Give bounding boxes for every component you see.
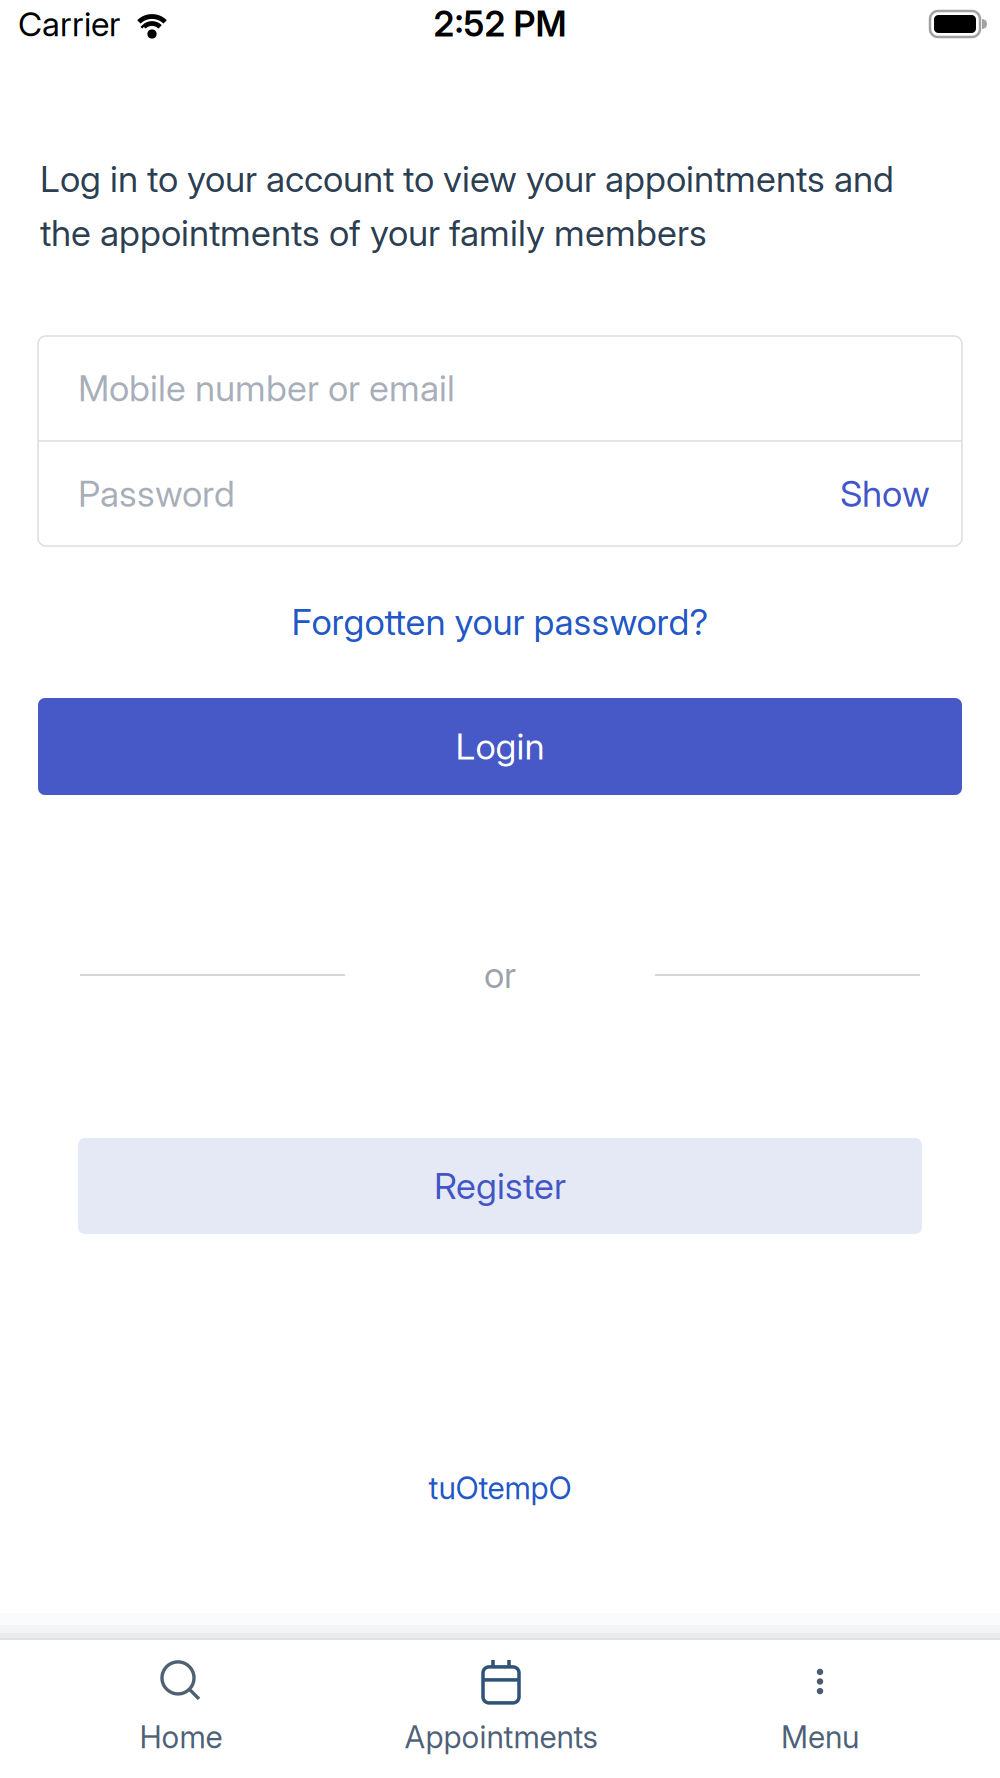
staticText: Show <box>840 472 930 515</box>
staticText: Forgotten your password? <box>291 601 708 643</box>
button[interactable]: Login <box>38 698 962 795</box>
staticText: or <box>484 954 516 996</box>
staticText: Register <box>434 1165 566 1207</box>
staticText: Password <box>78 472 235 515</box>
staticText: the appointments of your family members <box>40 212 707 254</box>
staticText: Carrier <box>18 4 120 44</box>
staticText: 2:52 PM <box>433 4 566 44</box>
button[interactable]: Password <box>38 442 962 546</box>
button[interactable]: tuOtempO <box>428 1468 571 1508</box>
button[interactable]: Register <box>78 1138 922 1234</box>
button[interactable]: Forgotten your password? <box>291 595 708 649</box>
staticText: Menu <box>781 1719 859 1755</box>
button[interactable]: Menu <box>640 1663 1000 1755</box>
button[interactable]: Home <box>0 1663 362 1755</box>
staticText: Mobile number or email <box>78 367 455 409</box>
staticText: Appointments <box>404 1719 597 1755</box>
button[interactable]: Appointments <box>362 1663 640 1755</box>
staticText: Log in to your account to view your appo… <box>40 158 894 200</box>
staticText: Home <box>139 1719 222 1755</box>
button[interactable]: Mobile number or email <box>38 336 962 440</box>
staticText: tuOtempO <box>428 1470 571 1506</box>
staticText: Login <box>455 725 544 768</box>
